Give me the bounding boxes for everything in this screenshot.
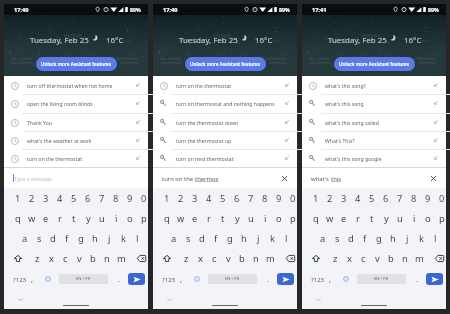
button[interactable]: s [181, 228, 195, 248]
button[interactable]: ?123 [10, 269, 30, 289]
button[interactable]: 2 [323, 188, 337, 208]
button[interactable]: 2 [25, 188, 39, 208]
button[interactable]: 6 [81, 188, 95, 208]
button[interactable]: . [112, 269, 127, 289]
button[interactable]: 7 [393, 188, 407, 208]
button[interactable]: z [179, 248, 193, 268]
button[interactable]: Type a message [4, 168, 148, 188]
button[interactable]: 0 [435, 188, 449, 208]
button[interactable]: , [174, 269, 189, 289]
button[interactable]: r [53, 208, 67, 228]
button[interactable]: x [342, 248, 356, 268]
button[interactable]: l [130, 228, 144, 248]
button[interactable]: d [46, 228, 60, 248]
button[interactable]: turn the thermostat up [153, 131, 297, 149]
button[interactable]: what's this song [302, 94, 446, 112]
button[interactable]: o [421, 208, 435, 228]
button[interactable]: w [323, 208, 337, 228]
button[interactable]: Unlock more Assistant features [185, 57, 266, 71]
button[interactable]: o [272, 208, 286, 228]
button[interactable]: 2 [174, 188, 188, 208]
button[interactable]: 1 [309, 188, 323, 208]
button[interactable]: 8 [109, 188, 123, 208]
button[interactable]: , [323, 269, 338, 289]
button[interactable]: EN • FR [208, 274, 257, 284]
button[interactable]: d [195, 228, 209, 248]
button[interactable]: 9 [421, 188, 435, 208]
button[interactable]: b [86, 248, 100, 268]
button[interactable]: q [309, 208, 323, 228]
button[interactable]: d [344, 228, 358, 248]
button[interactable]: j [400, 228, 414, 248]
button[interactable]: w [174, 208, 188, 228]
button[interactable]: b [235, 248, 249, 268]
button[interactable]: Emoji [338, 269, 353, 289]
button[interactable]: Thank You [4, 113, 148, 131]
button[interactable]: g [372, 228, 386, 248]
button[interactable]: 7 [244, 188, 258, 208]
button[interactable]: w [25, 208, 39, 228]
button[interactable]: k [265, 228, 279, 248]
button[interactable]: s [32, 228, 46, 248]
button[interactable]: 9 [123, 188, 137, 208]
button[interactable]: EN • FR [357, 274, 406, 284]
button[interactable]: Clear query [427, 172, 439, 184]
button[interactable]: 4 [351, 188, 365, 208]
button[interactable]: 8 [258, 188, 272, 208]
button[interactable]: k [116, 228, 130, 248]
button[interactable]: t [216, 208, 230, 228]
button[interactable]: , [25, 269, 40, 289]
button[interactable]: 1 [160, 188, 174, 208]
button[interactable]: 3 [188, 188, 202, 208]
button[interactable]: f [358, 228, 372, 248]
button[interactable]: y [379, 208, 393, 228]
button[interactable]: 6 [230, 188, 244, 208]
button[interactable]: j [251, 228, 265, 248]
button[interactable]: Hide keyboard [165, 295, 174, 304]
button[interactable]: 4 [202, 188, 216, 208]
button[interactable]: o [123, 208, 137, 228]
button[interactable]: ?123 [308, 269, 328, 289]
button[interactable]: turn the thermostat down [153, 113, 297, 131]
button[interactable]: a [18, 228, 32, 248]
button[interactable]: turn on thermostat and nothing happens [153, 94, 297, 112]
button[interactable]: n [249, 248, 263, 268]
button[interactable]: 8 [407, 188, 421, 208]
button[interactable]: Shift [309, 248, 323, 268]
button[interactable]: Hide keyboard [16, 295, 25, 304]
button[interactable]: h [386, 228, 400, 248]
button[interactable]: turn on the thermostat [4, 149, 148, 167]
button[interactable]: 4 [53, 188, 67, 208]
button[interactable]: h [237, 228, 251, 248]
button[interactable]: f [60, 228, 74, 248]
button[interactable]: . [410, 269, 425, 289]
button[interactable]: 5 [67, 188, 81, 208]
button[interactable]: p [286, 208, 300, 228]
button[interactable]: turn on the [153, 168, 297, 188]
button[interactable]: turn on the thermostat [153, 76, 297, 94]
button[interactable]: c [58, 248, 72, 268]
button[interactable]: what's [302, 168, 446, 188]
button[interactable]: 5 [216, 188, 230, 208]
button[interactable]: p [435, 208, 449, 228]
button[interactable]: a [316, 228, 330, 248]
button[interactable]: Send [426, 273, 443, 285]
button[interactable]: m [263, 248, 277, 268]
button[interactable]: Shift [160, 248, 174, 268]
button[interactable]: y [230, 208, 244, 228]
button[interactable]: q [160, 208, 174, 228]
button[interactable]: 6 [379, 188, 393, 208]
button[interactable]: what's this song called [302, 113, 446, 131]
button[interactable]: e [337, 208, 351, 228]
button[interactable]: Backspace [134, 248, 148, 268]
button[interactable]: b [384, 248, 398, 268]
button[interactable]: r [202, 208, 216, 228]
button[interactable]: k [414, 228, 428, 248]
button[interactable]: Unlock more Assistant features [334, 57, 415, 71]
button[interactable]: z [30, 248, 44, 268]
button[interactable]: Backspace [283, 248, 297, 268]
button[interactable]: a [167, 228, 181, 248]
button[interactable]: 0 [286, 188, 300, 208]
button[interactable]: v [72, 248, 86, 268]
button[interactable]: e [39, 208, 53, 228]
